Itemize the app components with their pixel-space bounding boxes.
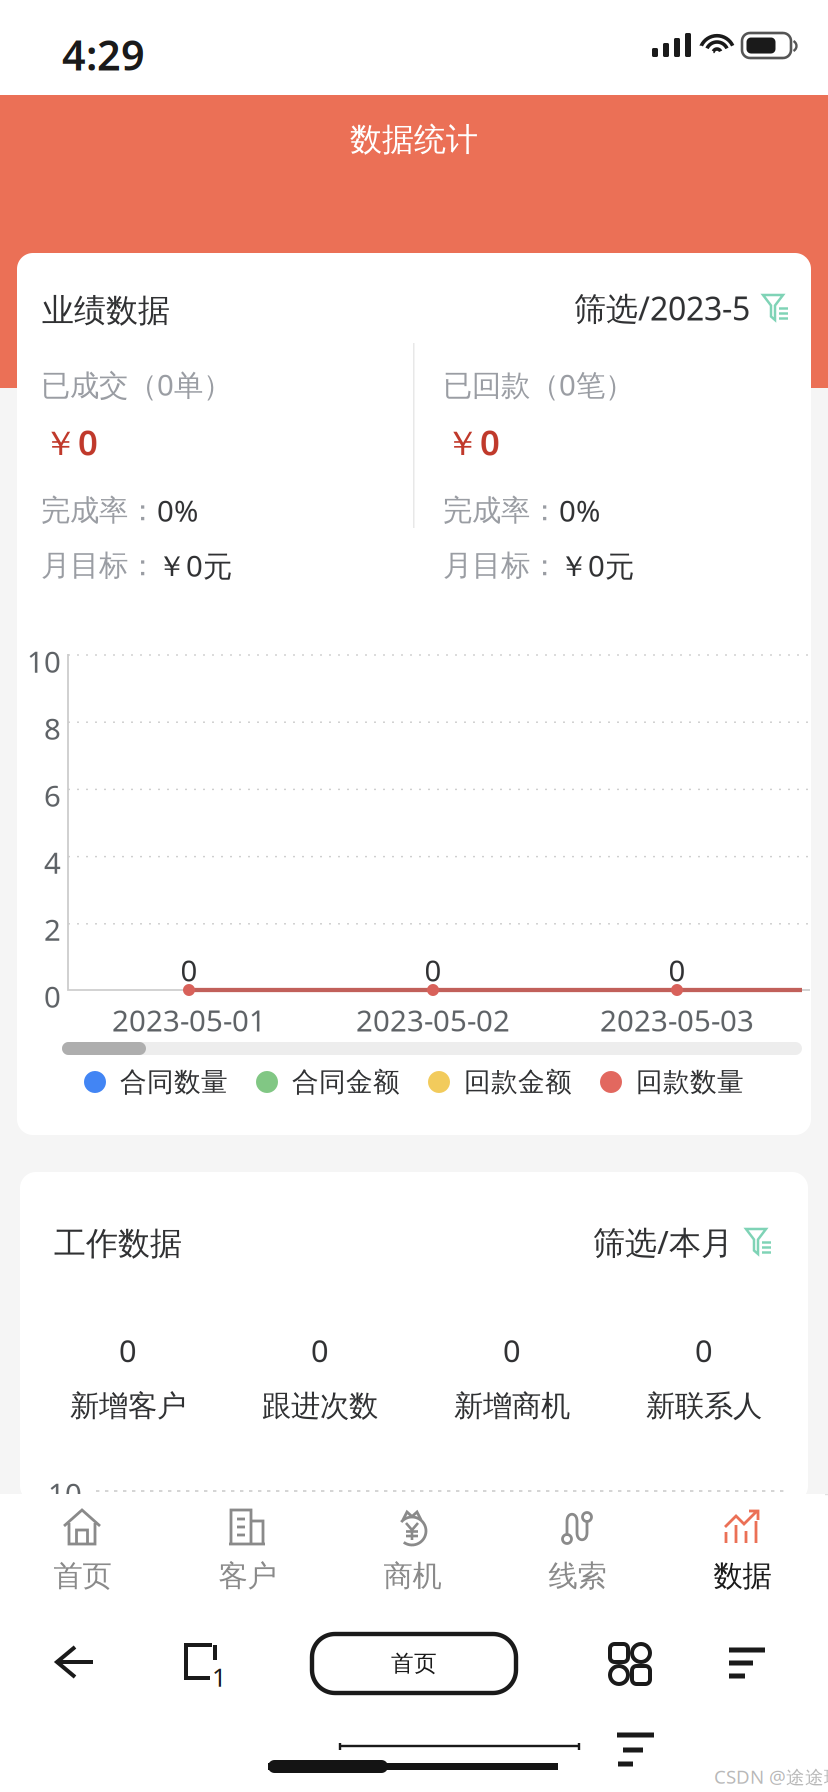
staticText: 0 xyxy=(695,1330,713,1371)
staticText: ￥0 xyxy=(445,419,500,465)
staticText: 0 xyxy=(424,950,441,989)
staticText: 6 xyxy=(44,776,61,815)
staticText: 月目标： xyxy=(41,547,157,583)
button[interactable]: Apps xyxy=(610,1644,652,1686)
staticText: 1 xyxy=(212,1660,226,1694)
staticText: 工作数据 xyxy=(54,1224,182,1263)
staticText: CSDN @途途珺 xyxy=(714,1764,828,1789)
staticText: 新增客户 xyxy=(70,1388,186,1424)
staticText: 0 xyxy=(119,1330,137,1371)
staticText: 线索 xyxy=(548,1558,606,1594)
staticText: 8 xyxy=(44,709,61,748)
staticText: 合同数量 xyxy=(120,1066,228,1098)
button[interactable]: 数据 xyxy=(660,1494,825,1600)
button[interactable]: Menu xyxy=(726,1643,768,1683)
button[interactable]: 商机 xyxy=(330,1494,495,1600)
staticText: 完成率： xyxy=(41,492,157,528)
staticText: 0 xyxy=(503,1330,521,1371)
staticText: 新联系人 xyxy=(646,1388,762,1424)
staticText: 跟进次数 xyxy=(262,1388,378,1424)
staticText: 月目标： xyxy=(443,547,559,583)
button[interactable]: 首页 xyxy=(312,1634,516,1693)
staticText: 0 xyxy=(180,950,197,989)
staticText: 2023-05-03 xyxy=(600,1000,754,1039)
button[interactable]: 客户 xyxy=(165,1494,330,1600)
button[interactable]: 线索 xyxy=(495,1494,660,1600)
staticText: 回款数量 xyxy=(636,1066,744,1098)
button[interactable]: Back xyxy=(53,1643,99,1683)
staticText: ￥0元 xyxy=(157,546,232,585)
staticText: 0% xyxy=(157,491,198,530)
staticText: 已成交（0单） xyxy=(41,365,232,404)
staticText: 商机 xyxy=(383,1558,441,1594)
staticText: 0 xyxy=(44,977,61,1016)
staticText: 业绩数据 xyxy=(42,291,170,330)
staticText: 回款金额 xyxy=(464,1066,572,1098)
staticText: 完成率： xyxy=(443,492,559,528)
staticText: 首页 xyxy=(391,1650,437,1677)
staticText: 10 xyxy=(27,642,61,681)
staticText: 筛选/本月 xyxy=(593,1221,733,1263)
staticText: 10 xyxy=(48,1474,82,1513)
staticText: 4 xyxy=(44,843,61,882)
staticText: 0 xyxy=(311,1330,329,1371)
button[interactable]: 筛选/2023-5 xyxy=(545,286,793,330)
staticText: 筛选/2023-5 xyxy=(574,287,750,329)
staticText: 0% xyxy=(559,491,600,530)
staticText: 已回款（0笔） xyxy=(443,365,634,404)
staticText: 新增商机 xyxy=(454,1388,570,1424)
staticText: ￥0 xyxy=(43,419,98,465)
staticText: 数据统计 xyxy=(350,120,478,159)
button[interactable]: 首页 xyxy=(0,1494,165,1600)
staticText: 2023-05-02 xyxy=(356,1000,510,1039)
staticText: 0 xyxy=(668,950,685,989)
staticText: ￥0元 xyxy=(559,546,634,585)
staticText: 数据 xyxy=(713,1558,771,1594)
staticText: 2 xyxy=(44,910,61,949)
button[interactable]: Recents xyxy=(182,1642,226,1684)
button[interactable]: 筛选/本月 xyxy=(554,1220,776,1264)
staticText: 首页 xyxy=(53,1558,111,1594)
staticText: 2023-05-01 xyxy=(112,1000,266,1039)
staticText: 合同金额 xyxy=(292,1066,400,1098)
staticText: 4:29 xyxy=(62,27,145,82)
staticText: 客户 xyxy=(218,1558,276,1594)
